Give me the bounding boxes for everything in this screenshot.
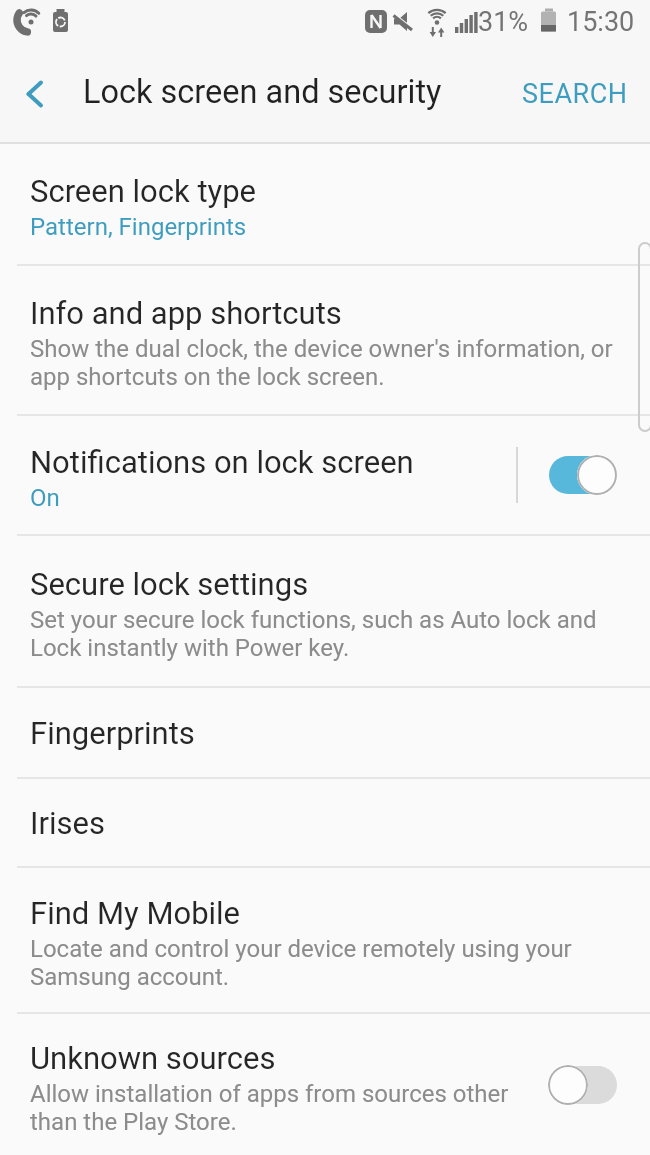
staticText: Irises xyxy=(30,805,105,841)
staticText: On xyxy=(30,484,60,512)
staticText: 15:30 xyxy=(567,6,635,38)
staticText: Show the dual clock, the device owner's … xyxy=(30,335,613,363)
staticText: Allow installation of apps from sources … xyxy=(30,1080,509,1108)
staticText: app shortcuts on the lock screen. xyxy=(30,363,385,391)
staticText: Screen lock type xyxy=(30,173,257,209)
button[interactable]: SEARCH xyxy=(522,78,628,110)
staticText: Secure lock settings xyxy=(30,566,309,602)
staticText: Fingerprints xyxy=(30,715,195,751)
staticText: 31% xyxy=(478,6,529,38)
staticText: Unknown sources xyxy=(30,1040,276,1076)
staticText: Lock instantly with Power key. xyxy=(30,634,350,662)
button[interactable]: Find My Mobile xyxy=(0,868,650,1012)
staticText: Locate and control your device remotely … xyxy=(30,935,572,963)
button[interactable]: Irises xyxy=(0,779,650,866)
staticText: Info and app shortcuts xyxy=(30,295,342,331)
button[interactable]: Fingerprints xyxy=(0,688,650,777)
staticText: Notifications on lock screen xyxy=(30,444,414,480)
button[interactable]: Secure lock settings xyxy=(0,536,650,686)
button[interactable] xyxy=(548,455,617,495)
button[interactable]: Unknown sources xyxy=(0,1014,650,1155)
button[interactable]: Info and app shortcuts xyxy=(0,266,650,414)
staticText: Samsung account. xyxy=(30,963,230,991)
staticText: Set your secure lock functions, such as … xyxy=(30,606,597,634)
button[interactable] xyxy=(548,1065,617,1105)
staticText: Find My Mobile xyxy=(30,895,241,931)
staticText: Lock screen and security xyxy=(83,73,442,111)
staticText: than the Play Store. xyxy=(30,1108,237,1136)
button[interactable]: Notifications on lock screen xyxy=(0,416,650,534)
button[interactable]: Screen lock type xyxy=(0,144,650,264)
staticText: Pattern, Fingerprints xyxy=(30,213,247,241)
staticText: SEARCH xyxy=(522,78,628,110)
button[interactable] xyxy=(0,45,70,142)
